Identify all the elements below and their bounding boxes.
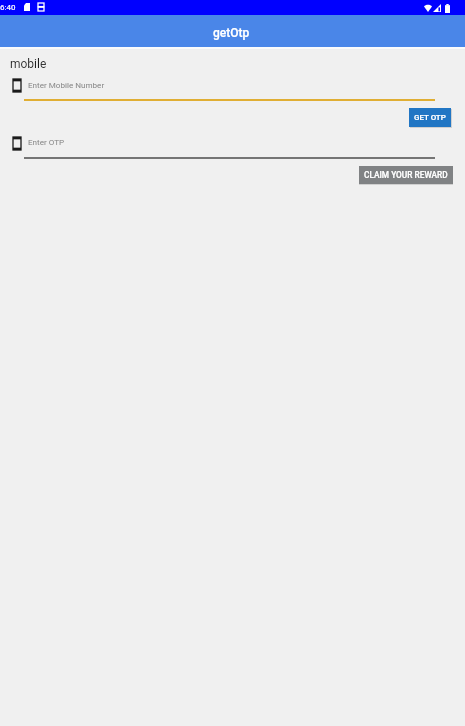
staticText: Enter OTP <box>28 137 65 146</box>
other: Phone <box>13 79 21 92</box>
other: Battery <box>445 4 450 13</box>
button[interactable]: GET OTP <box>409 108 451 127</box>
staticText: GET OTP <box>414 113 446 122</box>
other: Wi-Fi <box>424 4 432 12</box>
button[interactable]: CLAIM YOUR REWARD <box>359 166 453 184</box>
other: Notification <box>24 3 30 11</box>
button[interactable]: Phone <box>10 134 435 159</box>
staticText: mobile <box>10 57 47 71</box>
staticText: 6:40 <box>0 3 16 12</box>
staticText: Enter Mobile Number <box>28 80 105 89</box>
button[interactable]: Phone <box>10 76 435 101</box>
other: Mobile signal <box>433 4 441 12</box>
other: Phone <box>13 137 21 150</box>
staticText: CLAIM YOUR REWARD <box>364 170 448 180</box>
other: Sync <box>38 3 44 11</box>
staticText: getOtp <box>213 26 250 40</box>
